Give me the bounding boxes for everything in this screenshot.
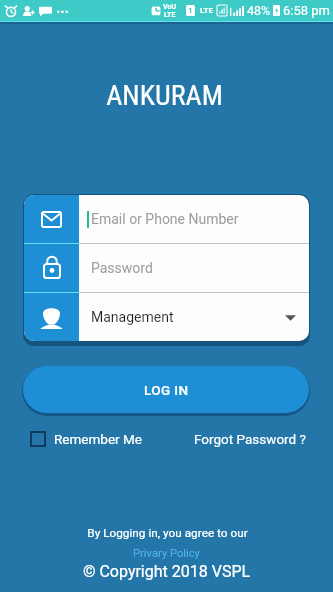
staticText: LOG IN bbox=[144, 382, 189, 398]
button[interactable]: Password bbox=[24, 244, 309, 292]
staticText: LTE bbox=[164, 11, 176, 19]
button[interactable]: Management bbox=[24, 293, 309, 341]
staticText: VoU bbox=[163, 3, 176, 11]
staticText: Email or Phone Number bbox=[91, 211, 239, 227]
staticText: LTE bbox=[200, 6, 213, 15]
button[interactable]: Privary Policy bbox=[127, 546, 206, 561]
button[interactable]: Remember Me bbox=[30, 431, 142, 447]
staticText: 48% bbox=[247, 3, 271, 18]
button[interactable]: LOG IN bbox=[23, 366, 309, 413]
staticText: Password bbox=[91, 260, 153, 276]
staticText: Management bbox=[91, 309, 174, 325]
staticText: ANKURAM bbox=[0, 79, 331, 112]
staticText: By Logging in, you agree to our bbox=[1, 526, 333, 540]
staticText: 1 bbox=[188, 6, 193, 15]
button[interactable]: Email or Phone Number bbox=[24, 195, 309, 243]
staticText: 6:58 pm bbox=[283, 3, 330, 18]
button[interactable]: Forgot Password ? bbox=[194, 431, 306, 447]
staticText: © Copyright 2018 VSPL bbox=[0, 562, 333, 581]
staticText: Remember Me bbox=[54, 431, 142, 447]
